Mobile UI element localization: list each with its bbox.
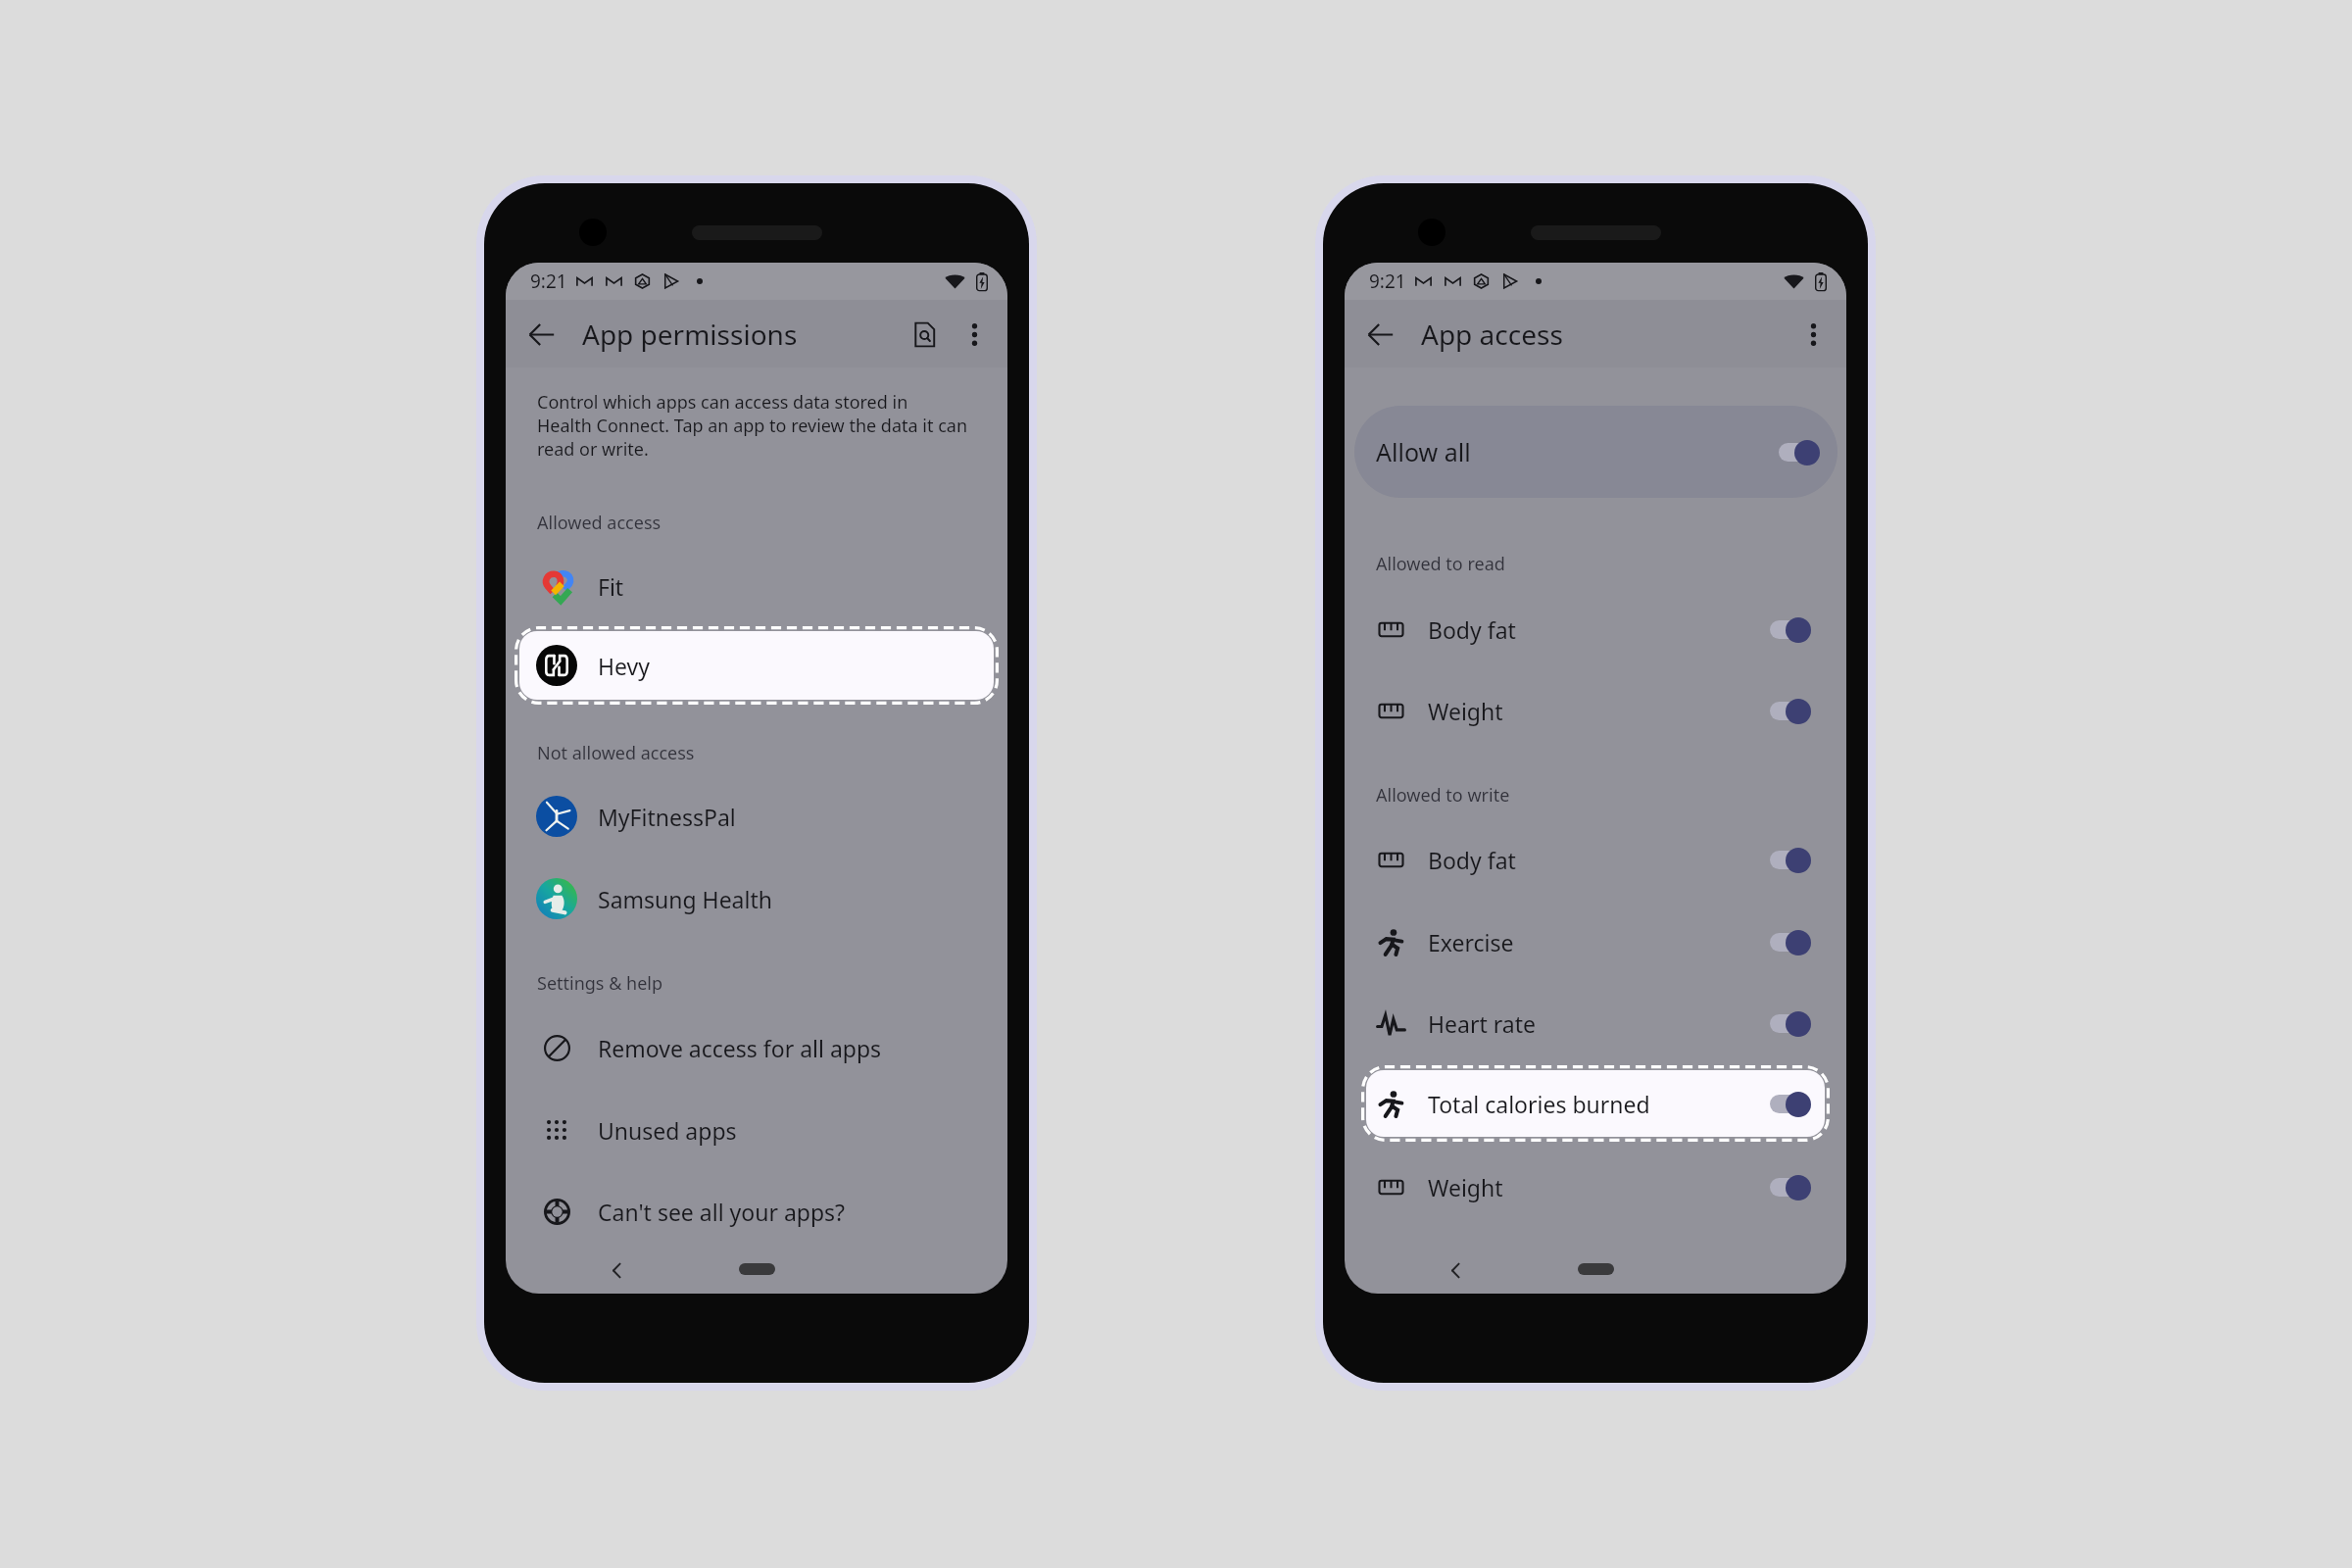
staticText: Settings & help bbox=[537, 971, 663, 996]
staticText: Total calories burned bbox=[1428, 1089, 1650, 1119]
button[interactable]: Remove access for all apps bbox=[506, 1012, 1007, 1083]
staticText: Samsung Health bbox=[598, 884, 772, 914]
button[interactable]: Exercise bbox=[1345, 906, 1846, 977]
button[interactable]: Unused apps bbox=[506, 1095, 1007, 1165]
staticText: 9:21 bbox=[530, 269, 567, 294]
button[interactable]: More options bbox=[952, 312, 997, 357]
button[interactable]: MyFitnessPal bbox=[506, 781, 1007, 852]
button[interactable]: Total calories burned bbox=[1366, 1070, 1825, 1137]
staticText: Allowed to read bbox=[1376, 552, 1505, 576]
staticText: Remove access for all apps bbox=[598, 1033, 882, 1063]
button[interactable]: Can't see all your apps? bbox=[506, 1176, 1007, 1247]
button[interactable]: Navigate back bbox=[518, 312, 563, 357]
button[interactable]: Samsung Health bbox=[506, 863, 1007, 934]
staticText: Exercise bbox=[1428, 927, 1514, 957]
button[interactable]: Heart rate permission bbox=[1770, 1010, 1811, 1037]
staticText: Weight bbox=[1428, 696, 1503, 726]
button[interactable]: Allow all bbox=[1779, 439, 1820, 465]
button[interactable]: Weight permission bbox=[1770, 1174, 1811, 1200]
button[interactable]: Body fat bbox=[1345, 824, 1846, 895]
button[interactable]: Allow all bbox=[1354, 406, 1837, 498]
staticText: Weight bbox=[1428, 1172, 1503, 1202]
button[interactable]: Exercise permission bbox=[1770, 929, 1811, 955]
button[interactable]: Home bbox=[1578, 1263, 1614, 1275]
button[interactable]: Navigate back bbox=[1357, 312, 1402, 357]
staticText: Allow all bbox=[1376, 435, 1471, 468]
button[interactable]: Fit bbox=[506, 551, 1007, 621]
button[interactable]: Weight permission bbox=[1770, 698, 1811, 724]
staticText: App access bbox=[1421, 316, 1563, 353]
button[interactable]: Weight bbox=[1345, 1151, 1846, 1222]
staticText: Body fat bbox=[1428, 845, 1516, 875]
button[interactable]: Heart rate bbox=[1345, 988, 1846, 1058]
staticText: Not allowed access bbox=[537, 741, 695, 765]
button[interactable]: Hevy bbox=[519, 631, 994, 700]
button[interactable]: Back bbox=[1441, 1255, 1470, 1285]
staticText: Allowed access bbox=[537, 511, 661, 535]
button[interactable]: Search in document bbox=[902, 312, 947, 357]
button[interactable]: Body fat permission bbox=[1770, 616, 1811, 643]
staticText: App permissions bbox=[582, 316, 798, 353]
staticText: Unused apps bbox=[598, 1115, 737, 1146]
staticText: Body fat bbox=[1428, 614, 1516, 645]
staticText: MyFitnessPal bbox=[598, 802, 736, 832]
staticText: Allowed to write bbox=[1376, 783, 1510, 808]
staticText: Can't see all your apps? bbox=[598, 1197, 846, 1227]
button[interactable]: Home bbox=[739, 1263, 775, 1275]
staticText: Heart rate bbox=[1428, 1008, 1536, 1039]
staticText: Hevy bbox=[598, 651, 650, 681]
staticText: 9:21 bbox=[1369, 269, 1406, 294]
staticText: Fit bbox=[598, 571, 624, 602]
button[interactable]: Weight bbox=[1345, 675, 1846, 746]
button[interactable]: Back bbox=[602, 1255, 631, 1285]
button[interactable]: More options bbox=[1790, 312, 1836, 357]
button[interactable]: Body fat bbox=[1345, 594, 1846, 664]
staticText: Control which apps can access data store… bbox=[537, 390, 998, 461]
button[interactable]: Body fat permission bbox=[1770, 847, 1811, 873]
button[interactable]: Total calories burned permission bbox=[1770, 1091, 1811, 1117]
